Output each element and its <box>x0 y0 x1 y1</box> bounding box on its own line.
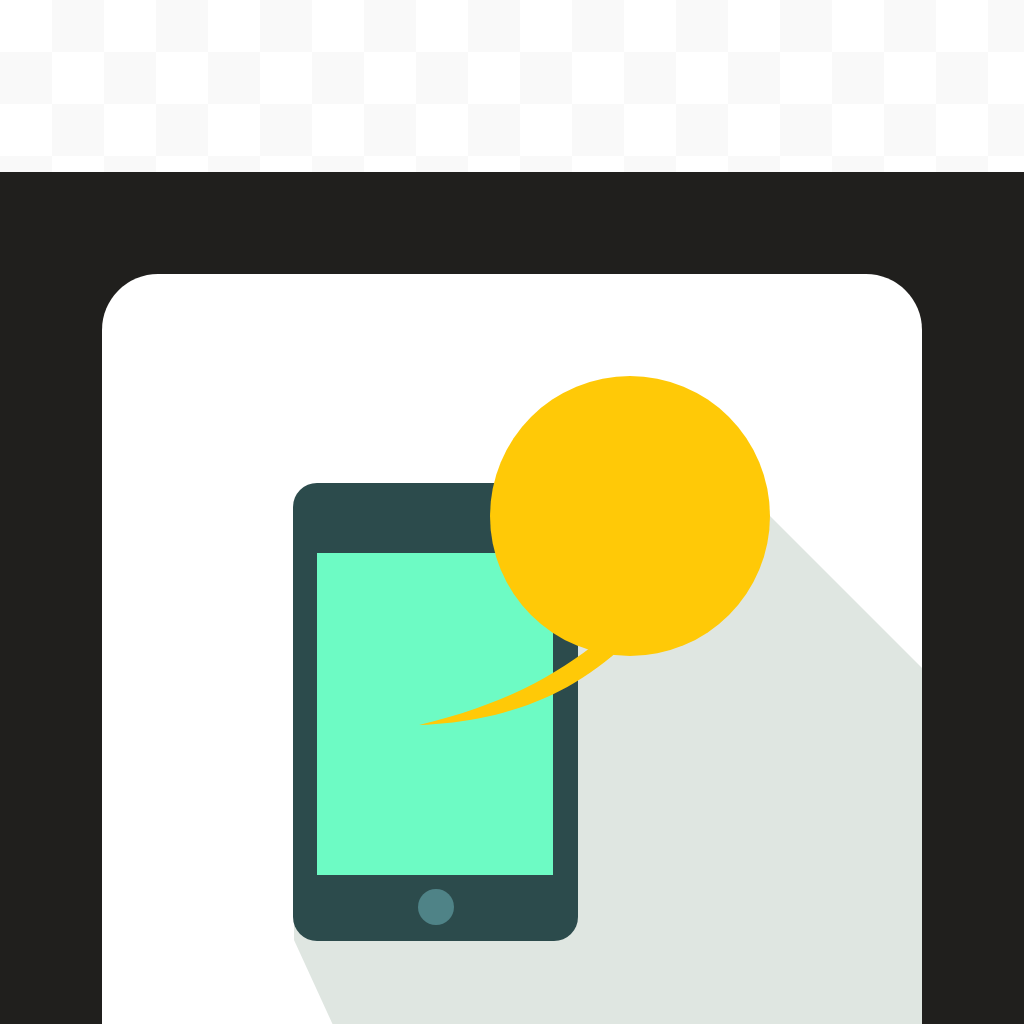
button[interactable]: Mobile chat message illustration <box>0 0 1024 1024</box>
